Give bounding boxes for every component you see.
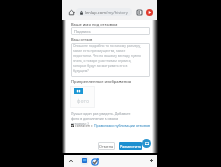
staticText: Разместить	[120, 144, 142, 149]
staticText: lenlup.com	[85, 10, 106, 15]
button[interactable]: lenlup.com	[76, 8, 132, 16]
button[interactable]: Antivirus	[90, 157, 99, 166]
staticText: Отмена	[99, 144, 114, 149]
staticText: Прикрепленные изображения	[71, 79, 132, 84]
staticText: согласен с	[75, 123, 94, 128]
staticText: Опишите подробно то по какому размеру, к…	[73, 43, 143, 73]
button[interactable]: Home	[66, 7, 76, 17]
button[interactable]: согласен с	[71, 123, 150, 128]
button[interactable]: Split screen	[135, 8, 143, 16]
staticText: /my/history	[106, 10, 128, 15]
button[interactable]: Record	[144, 7, 154, 17]
button[interactable]: File explorer	[80, 156, 89, 165]
button[interactable]: Опишите подробно то по какому размеру, к…	[71, 43, 150, 77]
button[interactable]: Подпись	[71, 27, 150, 35]
staticText: Лучше один раз увидеть. Добавьте фото в …	[71, 111, 135, 126]
button[interactable]: Add	[147, 156, 155, 164]
staticText: фото	[77, 98, 90, 104]
staticText: Ваш отзыв	[71, 37, 93, 42]
button[interactable]: Разместить	[119, 142, 142, 150]
button[interactable]: Add photo	[70, 86, 95, 108]
button[interactable]: Show hidden icons	[67, 157, 75, 165]
staticText: Подпись	[74, 29, 91, 34]
staticText: Правилами публикации отзывов	[94, 123, 150, 128]
button[interactable]: Chat	[142, 139, 151, 148]
button[interactable]: Отмена	[98, 142, 115, 150]
staticText: Ваше имя под отзывом	[71, 22, 118, 27]
